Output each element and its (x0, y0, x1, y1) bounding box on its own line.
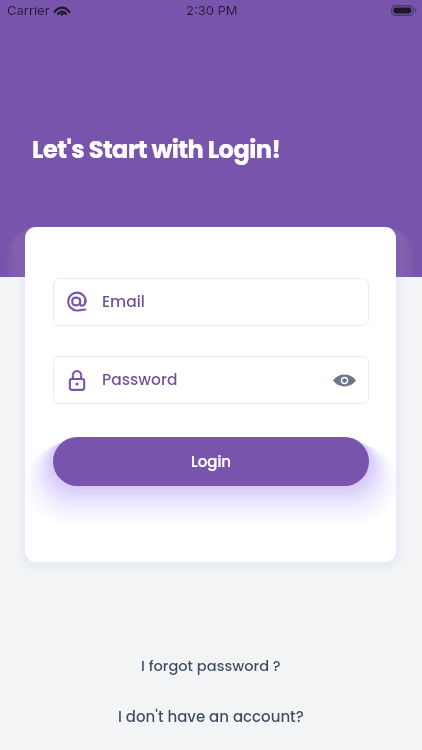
staticText: Email (102, 291, 145, 313)
staticText: Carrier (7, 2, 50, 18)
button[interactable]: Login (53, 437, 369, 486)
button[interactable]: I forgot password ? (127, 652, 295, 680)
staticText: 2:30 PM (186, 2, 238, 18)
staticText: Password (102, 369, 178, 391)
button[interactable]: I don't have an account? (104, 702, 318, 731)
button[interactable]: Show password (331, 367, 357, 393)
staticText: I forgot password ? (141, 656, 281, 676)
staticText: Login (191, 451, 232, 472)
staticText: Let's Start with Login! (32, 133, 281, 167)
button[interactable]: Email (53, 278, 369, 326)
button[interactable]: Password (53, 356, 369, 404)
staticText: I don't have an account? (118, 706, 304, 727)
